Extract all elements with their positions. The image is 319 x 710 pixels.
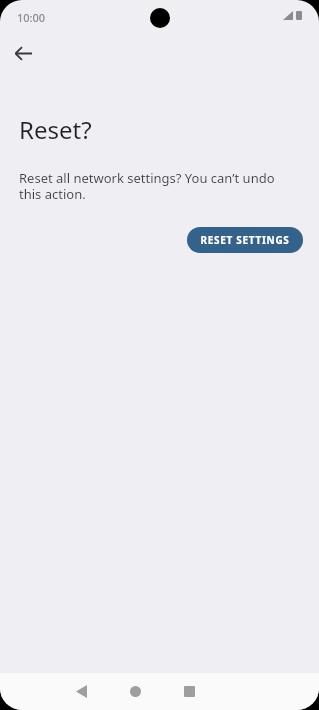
button[interactable]: Back bbox=[4, 34, 42, 72]
staticText: 10:00 bbox=[17, 10, 46, 25]
staticText: Reset all network settings? You can’t un… bbox=[19, 169, 297, 202]
staticText: Reset? bbox=[19, 113, 92, 146]
button[interactable]: Home bbox=[116, 673, 154, 710]
button[interactable]: Recent apps bbox=[170, 673, 208, 710]
button[interactable]: Back bbox=[62, 673, 100, 710]
button[interactable]: RESET SETTINGS bbox=[187, 227, 303, 253]
staticText: RESET SETTINGS bbox=[200, 233, 290, 247]
